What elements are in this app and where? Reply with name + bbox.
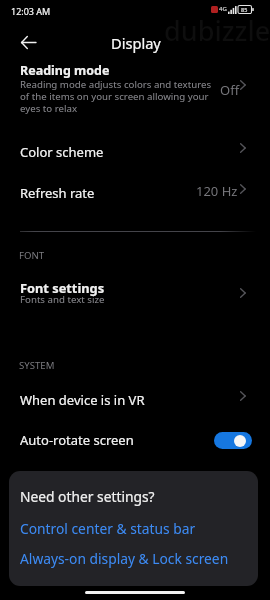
staticText: Refresh rate bbox=[20, 184, 95, 202]
button[interactable]: Back bbox=[17, 31, 40, 54]
button[interactable]: When device is in VR bbox=[0, 382, 270, 418]
button[interactable]: Control center & status bar bbox=[20, 519, 196, 538]
button[interactable]: Always-on display & Lock screen bbox=[20, 549, 229, 568]
staticText: Auto-rotate screen bbox=[20, 431, 134, 449]
button[interactable]: Refresh rate bbox=[0, 175, 270, 211]
button[interactable]: Auto-rotate screen bbox=[0, 422, 270, 458]
staticText: When device is in VR bbox=[20, 391, 145, 409]
button[interactable]: Font settings bbox=[0, 275, 270, 319]
staticText: Reading mode bbox=[20, 62, 110, 79]
staticText: Reading mode adjusts colors and textures… bbox=[20, 78, 219, 115]
staticText: Fonts and text size bbox=[20, 293, 105, 306]
staticText: dubizzle bbox=[164, 12, 270, 49]
staticText: Need other settings? bbox=[20, 487, 155, 506]
staticText: Off bbox=[220, 81, 240, 99]
button[interactable]: Color scheme bbox=[0, 134, 270, 170]
staticText: 120 Hz bbox=[196, 182, 238, 200]
staticText: 4G bbox=[219, 5, 227, 13]
staticText: Color scheme bbox=[20, 143, 104, 161]
staticText: 85 bbox=[241, 6, 248, 13]
staticText: Font settings bbox=[20, 279, 105, 296]
staticText: SYSTEM bbox=[19, 359, 55, 372]
staticText: 12:03 AM bbox=[11, 5, 51, 17]
button[interactable]: Reading mode bbox=[0, 58, 270, 118]
staticText: Display bbox=[111, 33, 161, 53]
staticText: FONT bbox=[19, 249, 45, 262]
